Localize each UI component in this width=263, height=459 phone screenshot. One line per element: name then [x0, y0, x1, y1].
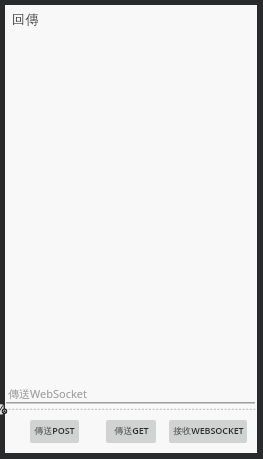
button[interactable]: 傳送GET	[106, 420, 156, 443]
button[interactable]: 傳送POST	[30, 420, 79, 443]
button[interactable]: 接收WEBSOCKET	[169, 420, 247, 443]
staticText: 傳送POST	[34, 424, 75, 436]
staticText: 接收WEBSOCKET	[173, 424, 244, 436]
button[interactable]: 回傳	[12, 11, 40, 27]
staticText: 傳送WebSocket	[8, 386, 88, 401]
staticText: 傳送GET	[114, 424, 149, 436]
other: Guideline percent handle	[0, 402, 10, 417]
